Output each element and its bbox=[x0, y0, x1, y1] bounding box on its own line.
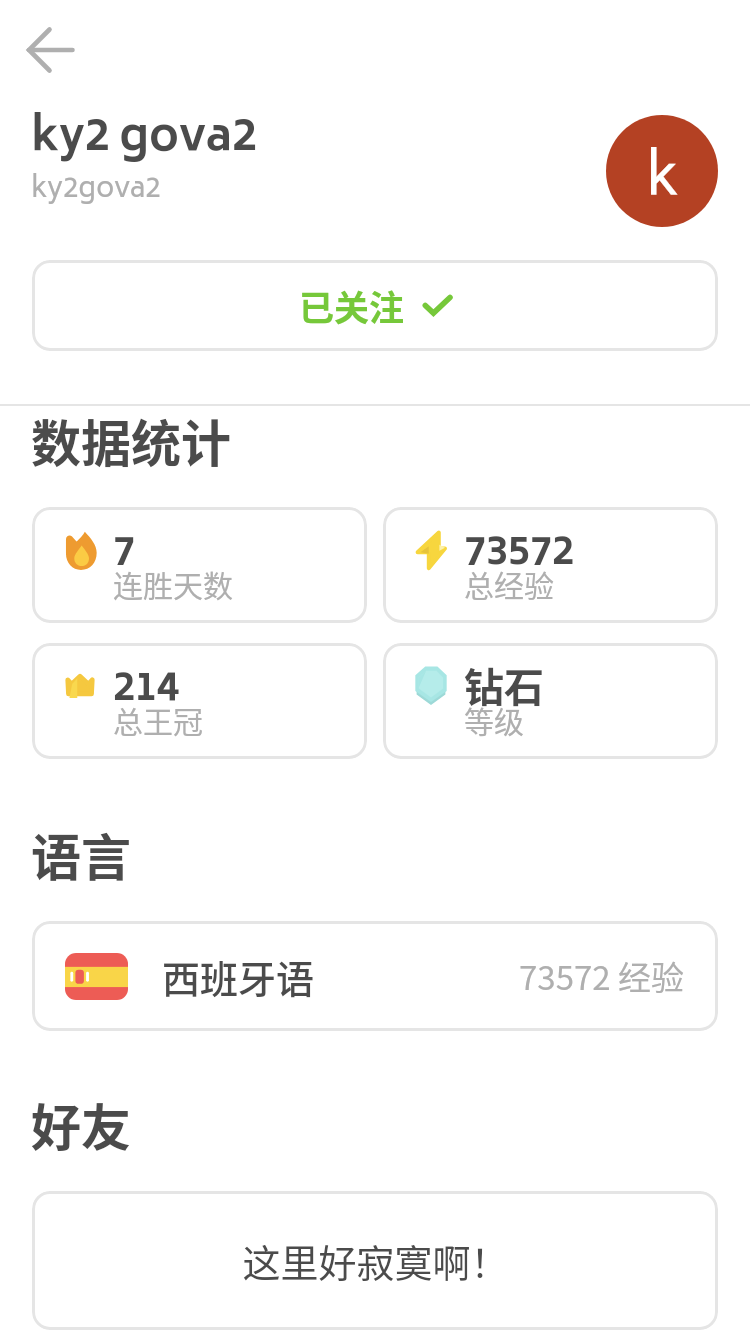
staticText: 钻石 bbox=[464, 656, 544, 714]
staticText: 连胜天数 bbox=[113, 562, 233, 605]
staticText: 好友 bbox=[31, 1088, 131, 1160]
staticText: 73572 bbox=[464, 520, 574, 591]
staticText: 73572 经验 bbox=[519, 952, 684, 1000]
staticText: ky2gova2 bbox=[31, 166, 161, 215]
button[interactable]: 钻石 bbox=[383, 643, 718, 759]
staticText: 214 bbox=[113, 656, 179, 727]
staticText: 7 bbox=[113, 520, 135, 591]
button[interactable]: Back bbox=[8, 14, 80, 86]
staticText: ky2 gova2 bbox=[31, 100, 257, 179]
staticText: 语言 bbox=[31, 818, 131, 890]
staticText: 等级 bbox=[464, 698, 524, 741]
staticText: 这里好寂寞啊！ bbox=[242, 1233, 509, 1288]
staticText: 西班牙语 bbox=[162, 949, 315, 1004]
button[interactable]: Profile avatar bbox=[606, 115, 718, 227]
button[interactable]: 这里好寂寞啊！ bbox=[32, 1191, 718, 1330]
button[interactable]: 73572 bbox=[383, 507, 718, 623]
staticText: k bbox=[646, 133, 679, 227]
button[interactable]: 7 bbox=[32, 507, 367, 623]
staticText: 总经验 bbox=[464, 562, 554, 605]
staticText: 已关注 bbox=[299, 280, 405, 331]
staticText: 数据统计 bbox=[31, 404, 231, 476]
button[interactable]: 西班牙语 bbox=[32, 921, 718, 1031]
button[interactable]: 已关注 bbox=[32, 260, 718, 351]
button[interactable]: 214 bbox=[32, 643, 367, 759]
staticText: 总王冠 bbox=[113, 698, 203, 741]
